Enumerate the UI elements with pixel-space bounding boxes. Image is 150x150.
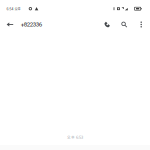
staticText: 6:54 오후	[6, 6, 20, 11]
button[interactable]: Search	[116, 16, 133, 33]
button[interactable]: Call	[99, 16, 116, 33]
button[interactable]: Back	[3, 16, 17, 33]
staticText: 오후 6:53	[67, 134, 83, 140]
staticText: +822336	[21, 21, 42, 28]
button[interactable]: More options	[133, 16, 150, 33]
button[interactable]: +822336	[17, 16, 46, 32]
